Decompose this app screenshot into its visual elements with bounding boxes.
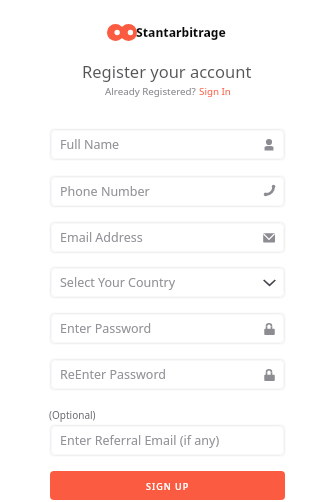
button[interactable]: Email Address [50, 222, 285, 253]
button[interactable]: Enter Referral Email (if any) [50, 425, 285, 456]
button[interactable]: ReEnter Password [50, 359, 285, 390]
staticText: Stantarbitrage [136, 24, 226, 40]
button[interactable]: Phone Number [50, 176, 285, 207]
other: Full Name [263, 139, 275, 151]
staticText: ReEnter Password [60, 366, 167, 383]
staticText: Already Registered? [105, 85, 199, 98]
button[interactable]: Enter Password [50, 313, 285, 344]
other: Email Address [263, 232, 275, 244]
button[interactable]: Select Your Country [50, 267, 285, 298]
staticText: Email Address [60, 229, 143, 246]
button[interactable]: Sign In [199, 85, 231, 98]
staticText: Full Name [60, 136, 120, 153]
staticText: (Optional) [49, 408, 96, 422]
staticText: Enter Referral Email (if any) [60, 432, 220, 449]
staticText: Select Your Country [60, 274, 176, 291]
staticText: Enter Password [60, 320, 152, 337]
staticText: Register your account [82, 60, 252, 82]
staticText: SIGN UP [146, 480, 190, 492]
other: Select Your Country [263, 277, 275, 289]
other: Password [263, 323, 275, 335]
staticText: Phone Number [60, 183, 150, 200]
button[interactable]: SIGN UP [50, 471, 285, 500]
other: Phone Number [263, 186, 275, 198]
button[interactable]: Full Name [50, 129, 285, 160]
other: Confirm password [263, 369, 275, 381]
